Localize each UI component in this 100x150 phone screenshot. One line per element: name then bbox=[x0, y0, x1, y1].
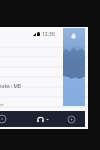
staticText: art bbox=[0, 102, 4, 108]
button[interactable]: art bbox=[0, 102, 10, 108]
button[interactable] bbox=[63, 28, 85, 106]
button[interactable] bbox=[0, 88, 88, 98]
button[interactable]: moke ; MB bbox=[0, 83, 23, 90]
button[interactable]: Settings bbox=[67, 115, 76, 124]
button[interactable]: Audio output bbox=[37, 116, 49, 123]
button[interactable] bbox=[0, 48, 88, 58]
button[interactable] bbox=[0, 58, 88, 68]
button[interactable]: Previous track bbox=[0, 114, 7, 124]
button[interactable] bbox=[0, 98, 88, 108]
staticText: 12:30 bbox=[42, 31, 55, 37]
button[interactable] bbox=[0, 108, 88, 118]
button[interactable] bbox=[0, 68, 88, 78]
staticText: moke ; MB bbox=[0, 83, 21, 90]
button[interactable] bbox=[0, 78, 88, 88]
button[interactable] bbox=[0, 38, 88, 48]
